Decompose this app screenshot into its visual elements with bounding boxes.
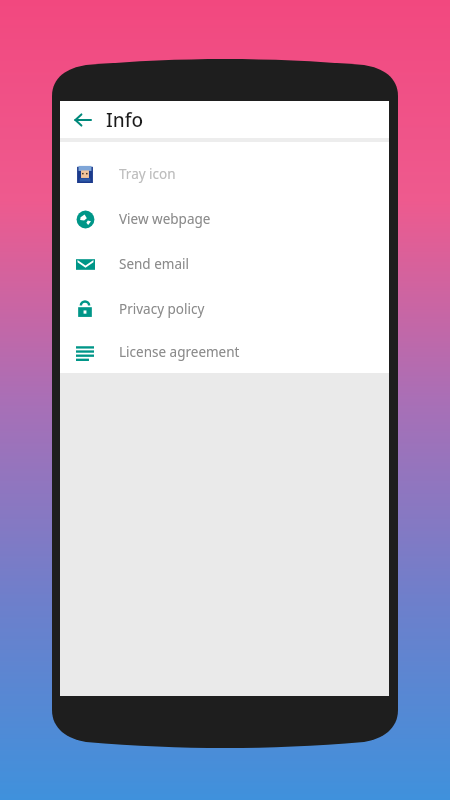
staticText: Info	[106, 107, 144, 133]
button[interactable]: License agreement	[60, 331, 389, 373]
staticText: Privacy policy	[119, 300, 205, 318]
button[interactable]: Back	[69, 106, 97, 134]
staticText: View webpage	[119, 210, 211, 228]
button[interactable]: Tray icon	[60, 151, 389, 196]
button[interactable]: Privacy policy	[60, 286, 389, 331]
button[interactable]: View webpage	[60, 196, 389, 241]
staticText: Tray icon	[119, 165, 176, 183]
staticText: Send email	[119, 255, 189, 273]
staticText: License agreement	[119, 343, 240, 361]
button[interactable]: Send email	[60, 241, 389, 286]
